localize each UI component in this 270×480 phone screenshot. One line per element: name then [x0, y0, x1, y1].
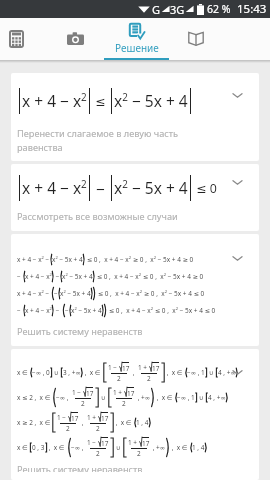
staticText: 2	[96, 424, 100, 433]
staticText: x + 4 − x2	[25, 306, 52, 315]
staticText: 1 −	[72, 388, 83, 397]
staticText: 2	[81, 399, 85, 408]
staticText: ∪	[114, 443, 123, 452]
staticText: −∞ ,	[56, 393, 71, 402]
staticText: 4 , +∞	[218, 368, 236, 377]
staticText: ≤ 0 , x + 4 − x2 ≤ 0 , x2 − 5x + 4 ≥ 0	[95, 272, 204, 281]
staticText: −	[54, 306, 62, 315]
staticText: 17	[142, 439, 150, 448]
staticText: −∞ , 0	[32, 368, 50, 377]
staticText: 1 +	[128, 438, 139, 447]
staticText: 3G	[170, 2, 185, 17]
staticText: 1 +	[113, 388, 124, 397]
staticText: x ∈	[17, 443, 30, 452]
staticText: ≤	[92, 93, 109, 110]
staticText: 17	[127, 389, 135, 398]
staticText: 2	[122, 399, 126, 408]
staticText: x ≥ 2 , x ∈	[17, 418, 52, 427]
button[interactable]: Expand step	[224, 169, 250, 195]
staticText: x2 − 5x + 4	[114, 177, 188, 199]
staticText: Решить систему неравенств	[17, 325, 143, 338]
staticText: 2	[66, 424, 70, 433]
staticText: 2	[147, 374, 151, 383]
staticText: Рассмотреть все возможные случаи	[17, 210, 178, 223]
staticText: , x ∈	[47, 443, 67, 452]
staticText: −	[17, 306, 23, 315]
button[interactable]: Calculator	[0, 18, 33, 60]
staticText: 62 %	[207, 2, 231, 16]
staticText: ≤ 0	[193, 180, 217, 197]
button[interactable]: x + 4 − x2	[11, 164, 259, 231]
button[interactable]: Book	[169, 18, 223, 60]
staticText: −∞ ,	[71, 443, 86, 452]
staticText: 0 , 3	[32, 443, 45, 452]
staticText: x2 − 5x + 4	[60, 289, 91, 298]
staticText: −	[92, 178, 109, 199]
staticText: −	[17, 272, 23, 281]
staticText: ,	[80, 418, 86, 427]
staticText: 1 +	[138, 363, 149, 372]
staticText: x + 4 − x2 −	[17, 289, 51, 298]
staticText: G	[152, 2, 161, 17]
button[interactable]: x + 4 − x2 −	[11, 234, 259, 346]
staticText: ∪	[52, 368, 61, 377]
staticText: ∪	[207, 368, 216, 377]
staticText: ≤ 0 , x + 4 − x2 ≥ 0 , x2 − 5x + 4 ≤ 0	[96, 289, 205, 298]
staticText: , x ∈	[83, 368, 103, 377]
staticText: x + 4 − x2	[25, 272, 52, 281]
staticText: Решение	[115, 41, 159, 55]
button[interactable]: Camera	[44, 18, 106, 60]
staticText: 17	[152, 364, 160, 373]
staticText: 4 , +∞	[208, 393, 226, 402]
staticText: 17	[86, 389, 94, 398]
button[interactable]: Expand step	[224, 359, 250, 385]
staticText: , x ∈	[114, 418, 134, 427]
staticText: 15:43	[237, 1, 267, 17]
button[interactable]: x + 4 − x2	[11, 73, 259, 161]
staticText: x2 − 5x + 4	[52, 255, 83, 264]
staticText: ≤ 0 , x + 4 − x2 ≤ 0 , x2 − 5x + 4 ≤ 0	[107, 306, 216, 315]
staticText: x ≤ 2 , x ∈	[17, 393, 52, 402]
staticText: x + 4 − x2 −	[17, 255, 50, 264]
staticText: Решить систему неравенств	[17, 463, 143, 472]
staticText: 1 −	[87, 438, 98, 447]
staticText: , x ∈	[170, 443, 190, 452]
staticText: 2	[117, 374, 121, 383]
staticText: 17	[101, 439, 109, 448]
staticText: 1 , 4	[136, 418, 149, 427]
staticText: −	[54, 289, 58, 298]
button[interactable]: x ∈	[11, 349, 259, 480]
staticText: , +∞	[151, 443, 166, 452]
staticText: , x ∈	[165, 368, 185, 377]
staticText: −∞ , 1	[187, 368, 205, 377]
staticText: 2	[137, 449, 141, 458]
staticText: , +∞	[136, 393, 151, 402]
staticText: ∪	[197, 393, 206, 402]
staticText: x + 4 − x2	[22, 90, 87, 112]
staticText: 1 +	[87, 413, 98, 422]
staticText: ,	[131, 368, 137, 377]
staticText: ≤ 0 , x + 4 − x2 ≥ 0 , x2 − 5x + 4 ≥ 0	[85, 255, 194, 264]
staticText: 17	[122, 364, 130, 373]
staticText: ∪	[99, 393, 108, 402]
staticText: 2	[96, 449, 100, 458]
staticText: x2 − 5x + 4	[62, 272, 93, 281]
staticText: , x ∈	[155, 393, 175, 402]
staticText: x2 − 5x + 4	[71, 306, 102, 315]
staticText: −	[65, 306, 69, 315]
staticText: x ∈	[17, 368, 30, 377]
staticText: 3 , +∞	[63, 368, 81, 377]
staticText: −	[54, 272, 60, 281]
staticText: x + 4 − x2	[22, 177, 87, 199]
staticText: 17	[71, 414, 79, 423]
staticText: 1 , 4	[192, 443, 205, 452]
staticText: 17	[101, 414, 109, 423]
staticText: −∞ , 1	[177, 393, 195, 402]
button[interactable]: Expand step	[224, 82, 250, 108]
button[interactable]: Expand step	[224, 245, 250, 271]
staticText: 1 −	[57, 413, 68, 422]
staticText: Перенести слагаемое в левую часть равенс…	[17, 127, 179, 153]
staticText: 1 −	[108, 363, 119, 372]
button[interactable]: Решение	[104, 18, 169, 60]
staticText: x2 − 5x + 4	[114, 90, 188, 112]
